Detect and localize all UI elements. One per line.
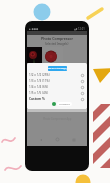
staticText: COMPRESS	[59, 103, 70, 106]
staticText: 1/2 x 1/2 (25%)	[29, 73, 50, 77]
staticText: 1/3 x 1/3 (11%)	[29, 79, 50, 83]
button[interactable]: 1/5 x 1/5 (4%)	[27, 90, 87, 96]
button[interactable]: 1/3 x 1/3 (11%)	[27, 78, 87, 84]
button[interactable]: SELECT IMAGE(S)	[48, 66, 67, 71]
button[interactable]: Back	[38, 137, 43, 142]
button[interactable]: COMPRESS	[57, 102, 72, 106]
staticText: ▲▮ 12:01	[74, 27, 85, 31]
button[interactable]: Custom %	[27, 96, 87, 102]
button[interactable]: 1/4 x 1/4 (6%)	[27, 84, 87, 90]
button[interactable]: Home	[55, 137, 60, 142]
button[interactable]: Recents	[71, 137, 76, 142]
staticText: Custom %	[29, 97, 45, 101]
staticText: SELECT IMAGE(S)	[48, 67, 67, 70]
staticText: Photo Compressor	[41, 36, 73, 41]
staticText: ▪ ●●●	[29, 27, 39, 31]
button[interactable]: 1/2 x 1/2 (25%)	[27, 72, 87, 78]
staticText: Selected Image(s)	[45, 42, 69, 46]
staticText: 1/5 x 1/5 (4%)	[29, 91, 49, 95]
staticText: 1/4 x 1/4 (6%)	[29, 85, 49, 89]
